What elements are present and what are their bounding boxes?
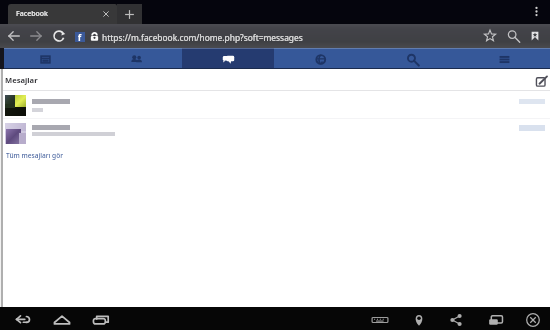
button[interactable]: Search — [506, 29, 520, 43]
button[interactable]: Bookmark star — [483, 29, 497, 43]
button[interactable]: Close tab — [101, 9, 111, 19]
button[interactable]: Search — [366, 48, 458, 70]
staticText: f — [78, 32, 82, 42]
staticText: Mesajlar — [5, 75, 38, 85]
button[interactable]: Bookmarks — [528, 29, 542, 43]
button[interactable]: Recent apps — [92, 311, 110, 329]
staticText: Tüm mesajları gör — [6, 151, 63, 160]
button[interactable]: Back — [7, 29, 21, 43]
staticText: Facebook — [16, 9, 48, 19]
button[interactable]: Close — [524, 311, 542, 329]
button[interactable]: News Feed — [0, 48, 91, 70]
button[interactable]: Share — [447, 311, 465, 329]
button[interactable]: Keyboard — [371, 311, 389, 329]
button[interactable]: Messages — [182, 48, 274, 70]
button[interactable]: Tüm mesajları gör — [0, 145, 550, 163]
button[interactable] — [0, 118, 550, 144]
button[interactable]: Location — [410, 311, 428, 329]
staticText: https://m.facebook.com/home.php?soft=mes… — [102, 32, 303, 43]
button[interactable]: More options — [530, 5, 543, 18]
button[interactable]: Menu — [458, 48, 550, 70]
button[interactable]: Facebook — [8, 4, 117, 24]
button[interactable]: Forward — [29, 29, 43, 43]
button[interactable]: Reload — [52, 29, 66, 43]
button[interactable] — [0, 91, 550, 117]
button[interactable]: New tab — [117, 4, 142, 24]
button[interactable]: Compose message — [536, 76, 547, 87]
button[interactable]: Cast screen — [487, 311, 505, 329]
button[interactable]: Friend requests — [91, 48, 182, 70]
button[interactable]: Home — [53, 311, 71, 329]
button[interactable]: Back — [14, 311, 32, 329]
button[interactable]: Notifications — [274, 48, 366, 70]
